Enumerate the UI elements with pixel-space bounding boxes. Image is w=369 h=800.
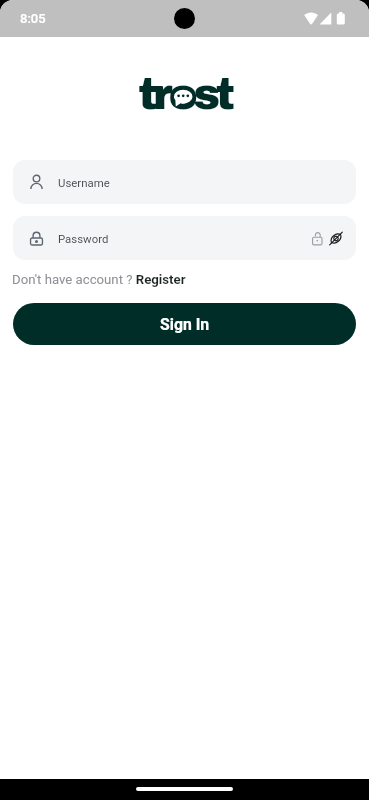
staticText: 8:05	[20, 11, 46, 26]
staticText: Password	[58, 232, 109, 245]
button[interactable]: Password	[13, 216, 356, 260]
button[interactable]: Don't have account ? Register	[12, 272, 186, 287]
button[interactable]: Sign In	[13, 303, 356, 345]
staticText: trost	[138, 70, 231, 118]
staticText: Sign In	[160, 315, 210, 334]
staticText: Don't have account ? Register	[12, 272, 186, 287]
button[interactable]: Username	[13, 160, 356, 204]
button[interactable]: Toggle password visibility	[329, 232, 343, 245]
button[interactable]: Lock	[312, 232, 323, 245]
staticText: Username	[58, 176, 110, 189]
